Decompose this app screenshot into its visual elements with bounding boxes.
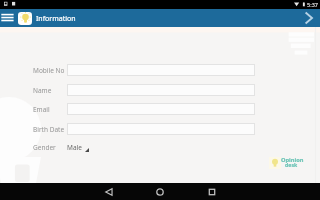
button[interactable]: Male xyxy=(67,142,89,153)
staticText: desk xyxy=(285,161,298,168)
staticText: Gender xyxy=(33,143,56,152)
staticText: Birth Date xyxy=(33,125,65,134)
button[interactable]: Menu xyxy=(0,9,16,27)
button[interactable]: Home xyxy=(151,183,169,200)
staticText: Opinion xyxy=(281,156,304,164)
staticText: Name xyxy=(33,86,52,95)
button[interactable] xyxy=(67,84,255,96)
button[interactable]: Next xyxy=(300,9,320,27)
button[interactable] xyxy=(67,123,255,135)
staticText: Information xyxy=(36,14,76,24)
staticText: 5:37 xyxy=(307,1,318,8)
staticText: Mobile No xyxy=(33,66,65,75)
button[interactable]: Recents xyxy=(203,183,221,200)
button[interactable]: Back xyxy=(100,183,118,200)
button[interactable] xyxy=(67,64,255,76)
staticText: Male xyxy=(67,143,82,152)
staticText: Email xyxy=(33,105,50,114)
button[interactable] xyxy=(67,103,255,115)
